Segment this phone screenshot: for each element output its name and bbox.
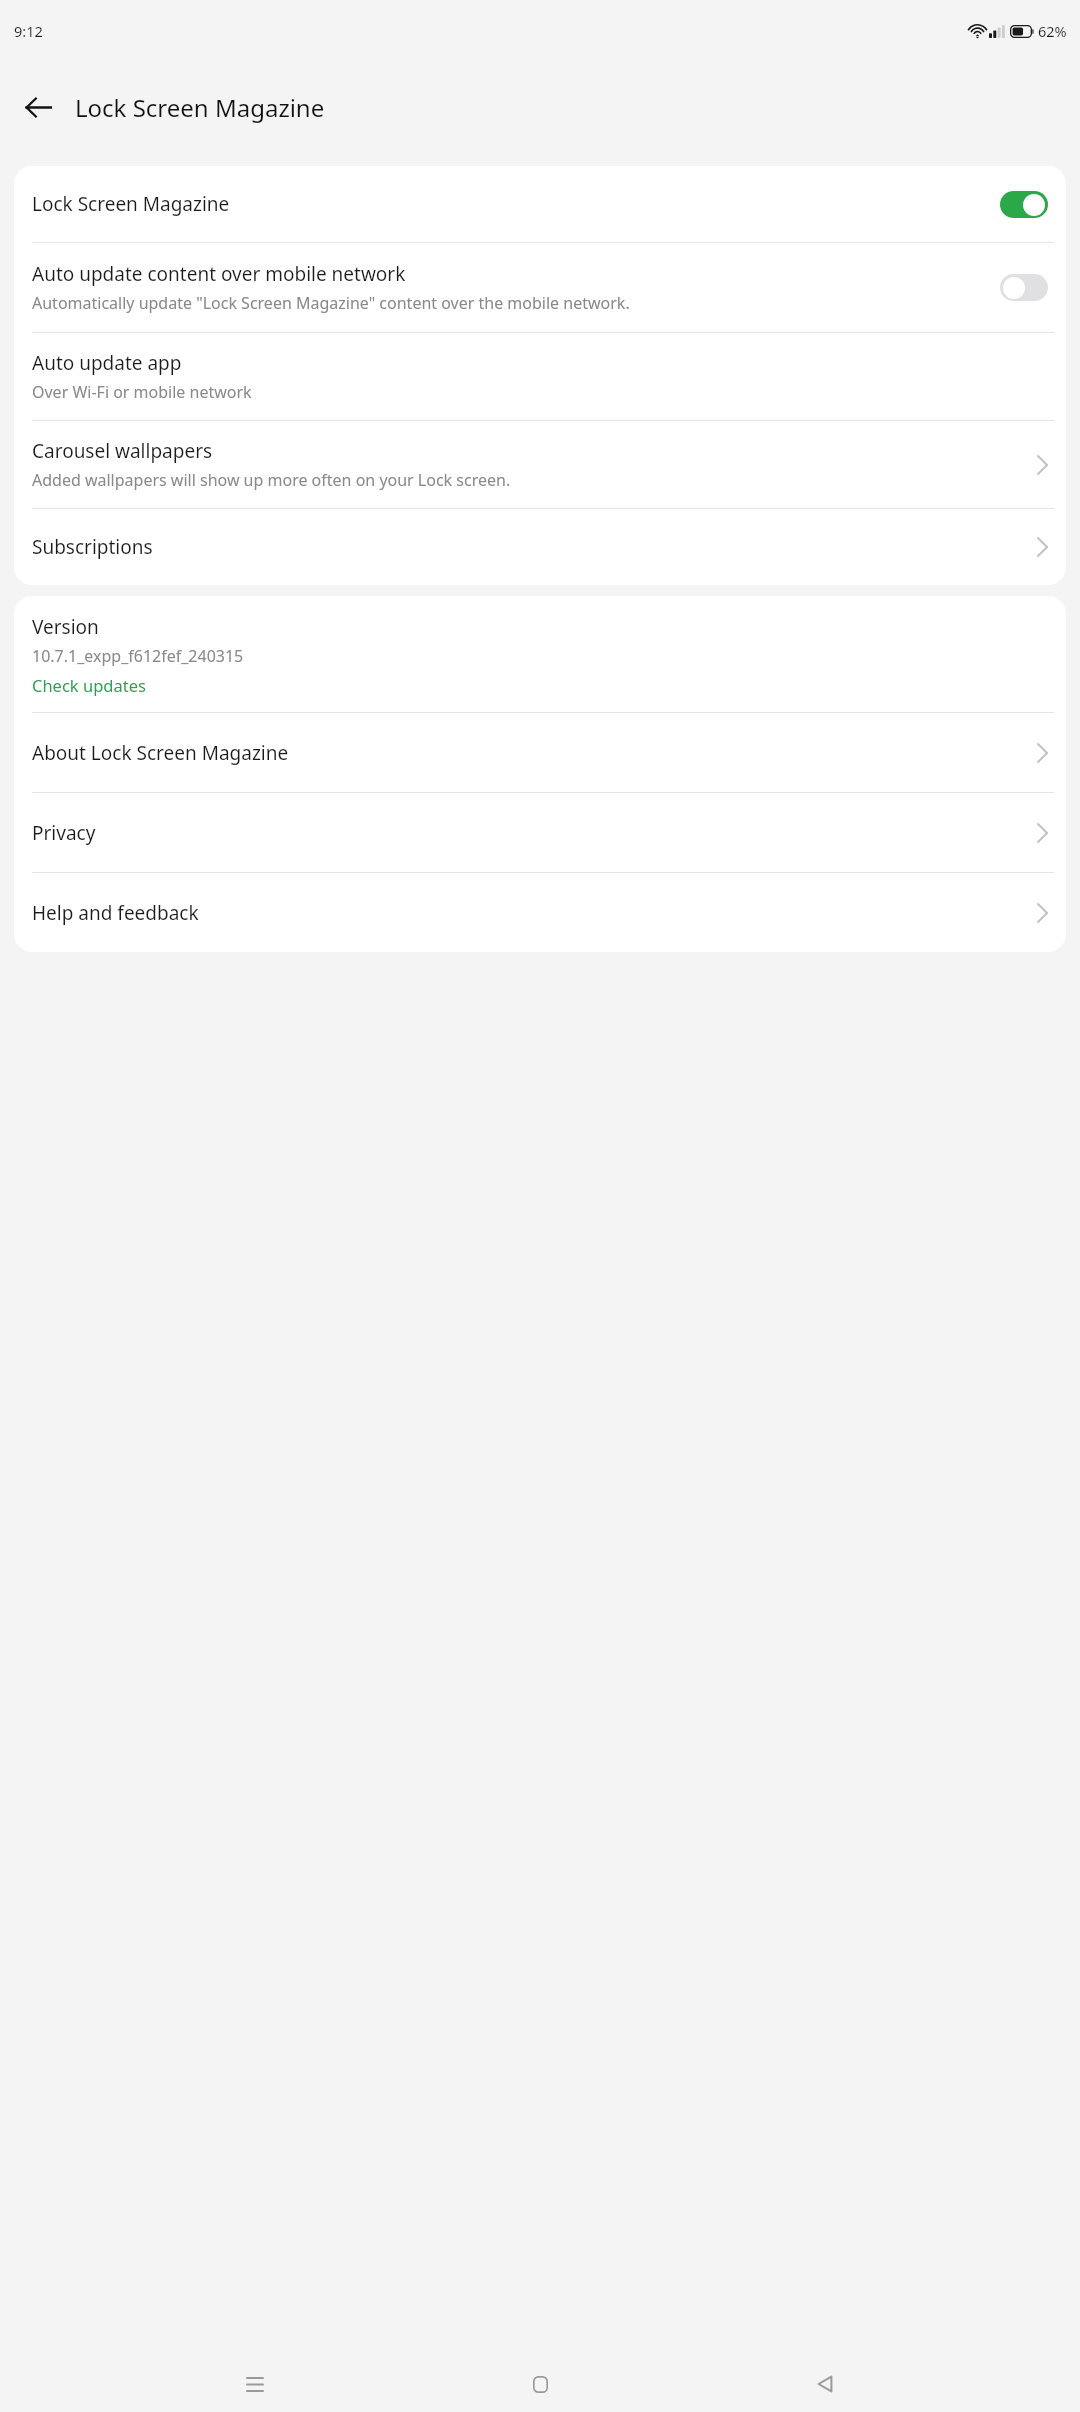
staticText: Added wallpapers will show up more often… xyxy=(32,469,511,491)
staticText: 62% xyxy=(1038,21,1067,41)
button[interactable]: Lock Screen Magazine xyxy=(14,166,1066,242)
staticText: Lock Screen Magazine xyxy=(75,91,325,124)
staticText: Auto update content over mobile network xyxy=(32,261,406,287)
button[interactable]: Privacy xyxy=(14,793,1066,872)
staticText: 9:12 xyxy=(14,21,43,41)
button[interactable]: On xyxy=(1000,191,1048,218)
staticText: Subscriptions xyxy=(32,534,1037,560)
button[interactable]: Recent apps xyxy=(225,2356,285,2412)
button[interactable]: Back xyxy=(10,79,66,135)
button[interactable]: Carousel wallpapers xyxy=(14,421,1066,508)
button[interactable]: Auto update app xyxy=(14,333,1066,420)
staticText: About Lock Screen Magazine xyxy=(32,740,1037,766)
staticText: Carousel wallpapers xyxy=(32,438,213,464)
button[interactable]: Off xyxy=(1000,274,1048,301)
staticText: Privacy xyxy=(32,820,1037,846)
button[interactable]: Version xyxy=(14,596,1066,712)
staticText: Automatically update "Lock Screen Magazi… xyxy=(32,292,630,314)
button[interactable]: Help and feedback xyxy=(14,873,1066,952)
button[interactable]: Check updates xyxy=(32,674,146,696)
button[interactable]: Auto update content over mobile network xyxy=(14,243,1066,332)
staticText: Lock Screen Magazine xyxy=(32,191,1000,217)
button[interactable]: Subscriptions xyxy=(14,509,1066,585)
staticText: Version xyxy=(32,614,99,640)
staticText: Over Wi-Fi or mobile network xyxy=(32,381,252,403)
button[interactable]: Home xyxy=(510,2356,570,2412)
staticText: 10.7.1_expp_f612fef_240315 xyxy=(32,645,244,667)
button[interactable]: About Lock Screen Magazine xyxy=(14,713,1066,792)
button[interactable]: Back xyxy=(795,2356,855,2412)
staticText: Help and feedback xyxy=(32,900,1037,926)
staticText: Auto update app xyxy=(32,350,182,376)
